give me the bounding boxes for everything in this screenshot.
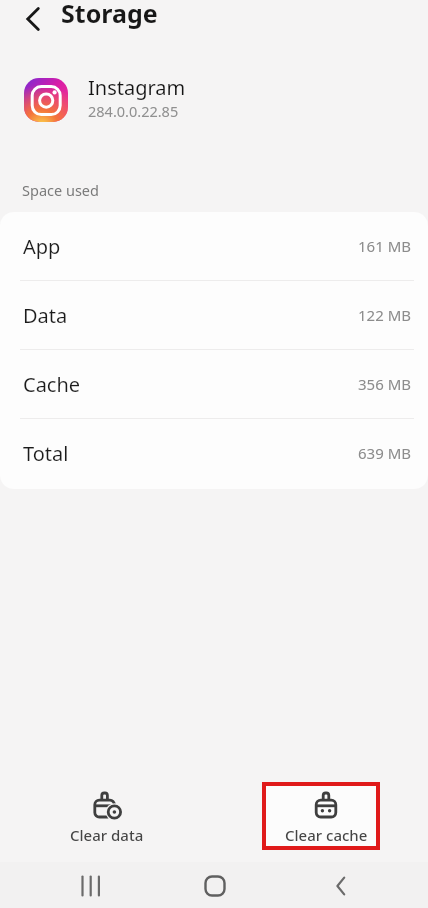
staticText: 161 MB (358, 236, 411, 256)
button[interactable]: App (0, 212, 428, 280)
staticText: Clear cache (285, 825, 368, 845)
staticText: Data (23, 302, 68, 329)
staticText: 639 MB (358, 443, 411, 463)
staticText: Clear data (70, 825, 144, 845)
staticText: 356 MB (358, 374, 411, 394)
button[interactable] (16, 1, 52, 37)
staticText: Total (23, 440, 69, 467)
staticText: Cache (23, 371, 81, 398)
staticText: Storage (61, 0, 158, 30)
staticText: 284.0.0.22.85 (88, 101, 179, 121)
button[interactable]: Total (0, 419, 428, 487)
staticText: Instagram (88, 74, 186, 100)
button[interactable]: Data (0, 281, 428, 349)
button[interactable]: Clear data (47, 791, 167, 845)
button[interactable] (324, 869, 358, 903)
button[interactable] (74, 869, 108, 903)
staticText: App (23, 233, 61, 260)
button[interactable]: Cache (0, 350, 428, 418)
button[interactable]: Clear cache (266, 791, 386, 845)
staticText: Space used (22, 180, 99, 200)
button[interactable] (198, 869, 232, 903)
staticText: 122 MB (358, 305, 411, 325)
